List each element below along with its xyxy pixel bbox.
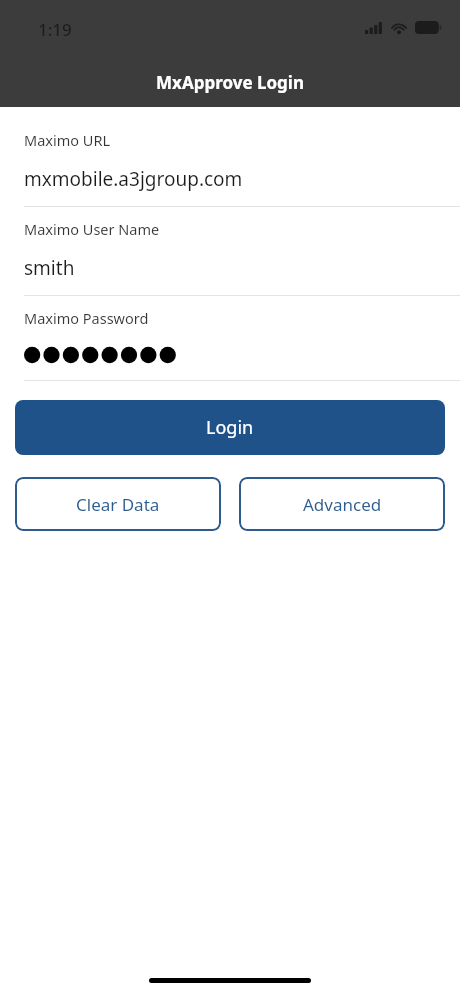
staticText: MxApprove Login xyxy=(0,71,460,94)
button[interactable]: Login xyxy=(15,400,445,455)
staticText: mxmobile.a3jgroup.com xyxy=(24,166,243,192)
staticText: smith xyxy=(24,255,75,281)
button[interactable]: Maximo User Name xyxy=(0,207,460,296)
staticText: Clear Data xyxy=(76,493,160,516)
button[interactable]: Maximo URL xyxy=(0,117,460,207)
other: Home indicator xyxy=(149,978,311,983)
button[interactable]: Advanced xyxy=(239,477,445,531)
staticText: Login xyxy=(206,415,254,440)
button[interactable]: Maximo Password xyxy=(0,296,460,381)
staticText: Maximo User Name xyxy=(24,219,160,239)
staticText: Advanced xyxy=(303,493,382,516)
staticText: Maximo URL xyxy=(24,130,111,150)
button[interactable]: Clear Data xyxy=(15,477,221,531)
staticText: 1:19 xyxy=(38,18,72,41)
staticText: Maximo Password xyxy=(24,308,149,328)
